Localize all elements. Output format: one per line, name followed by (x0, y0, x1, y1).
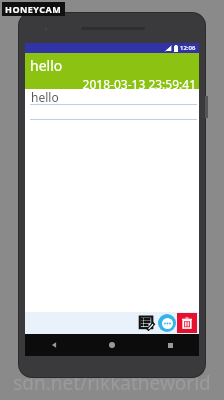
button[interactable]: hello (25, 89, 199, 120)
staticText: hello (30, 56, 63, 75)
staticText: 2018-03-13 23:59:41 (25, 76, 196, 89)
button[interactable]: Comments (158, 314, 176, 332)
button[interactable]: Delete (177, 313, 197, 333)
button[interactable]: Back (25, 334, 83, 356)
button[interactable]: hello (25, 53, 199, 89)
staticText: sdn.net/rikkatheworld (0, 370, 224, 396)
button[interactable]: Edit note (137, 313, 157, 333)
button[interactable]: Home (83, 334, 141, 356)
staticText: hello (31, 89, 59, 104)
staticText: 12:06 (180, 44, 196, 52)
staticText: HONEYCAM (5, 3, 62, 15)
button[interactable]: Recent apps (141, 334, 199, 356)
